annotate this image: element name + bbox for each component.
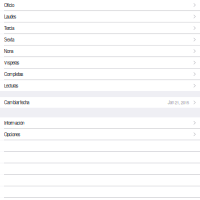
staticText: Cambiar fecha	[4, 99, 29, 106]
staticText: Tercia	[4, 25, 14, 31]
staticText: Laudes	[4, 13, 16, 20]
button[interactable]: Tercia	[0, 23, 200, 33]
button[interactable]: Completas	[0, 69, 200, 79]
staticText: Oficio	[4, 2, 14, 8]
button[interactable]: Sexta	[0, 34, 200, 45]
button[interactable]: Vísperas	[0, 57, 200, 68]
staticText: Jan 21, 2015	[168, 99, 189, 105]
button[interactable]: Lecturas	[0, 80, 200, 91]
staticText: Nona	[4, 48, 13, 54]
staticText: Información	[4, 120, 24, 126]
button[interactable]: Oficio	[0, 0, 200, 10]
button[interactable]: Cambiar fecha	[0, 97, 200, 108]
staticText: Completas	[4, 71, 23, 77]
staticText: Sexta	[4, 36, 14, 43]
button[interactable]: Laudes	[0, 11, 200, 22]
staticText: Opciones	[4, 131, 20, 137]
staticText: Vísperas	[4, 59, 19, 66]
button[interactable]: Nona	[0, 46, 200, 56]
button[interactable]: Información	[0, 117, 200, 128]
staticText: Lecturas	[4, 82, 18, 89]
button[interactable]: Opciones	[0, 129, 200, 140]
